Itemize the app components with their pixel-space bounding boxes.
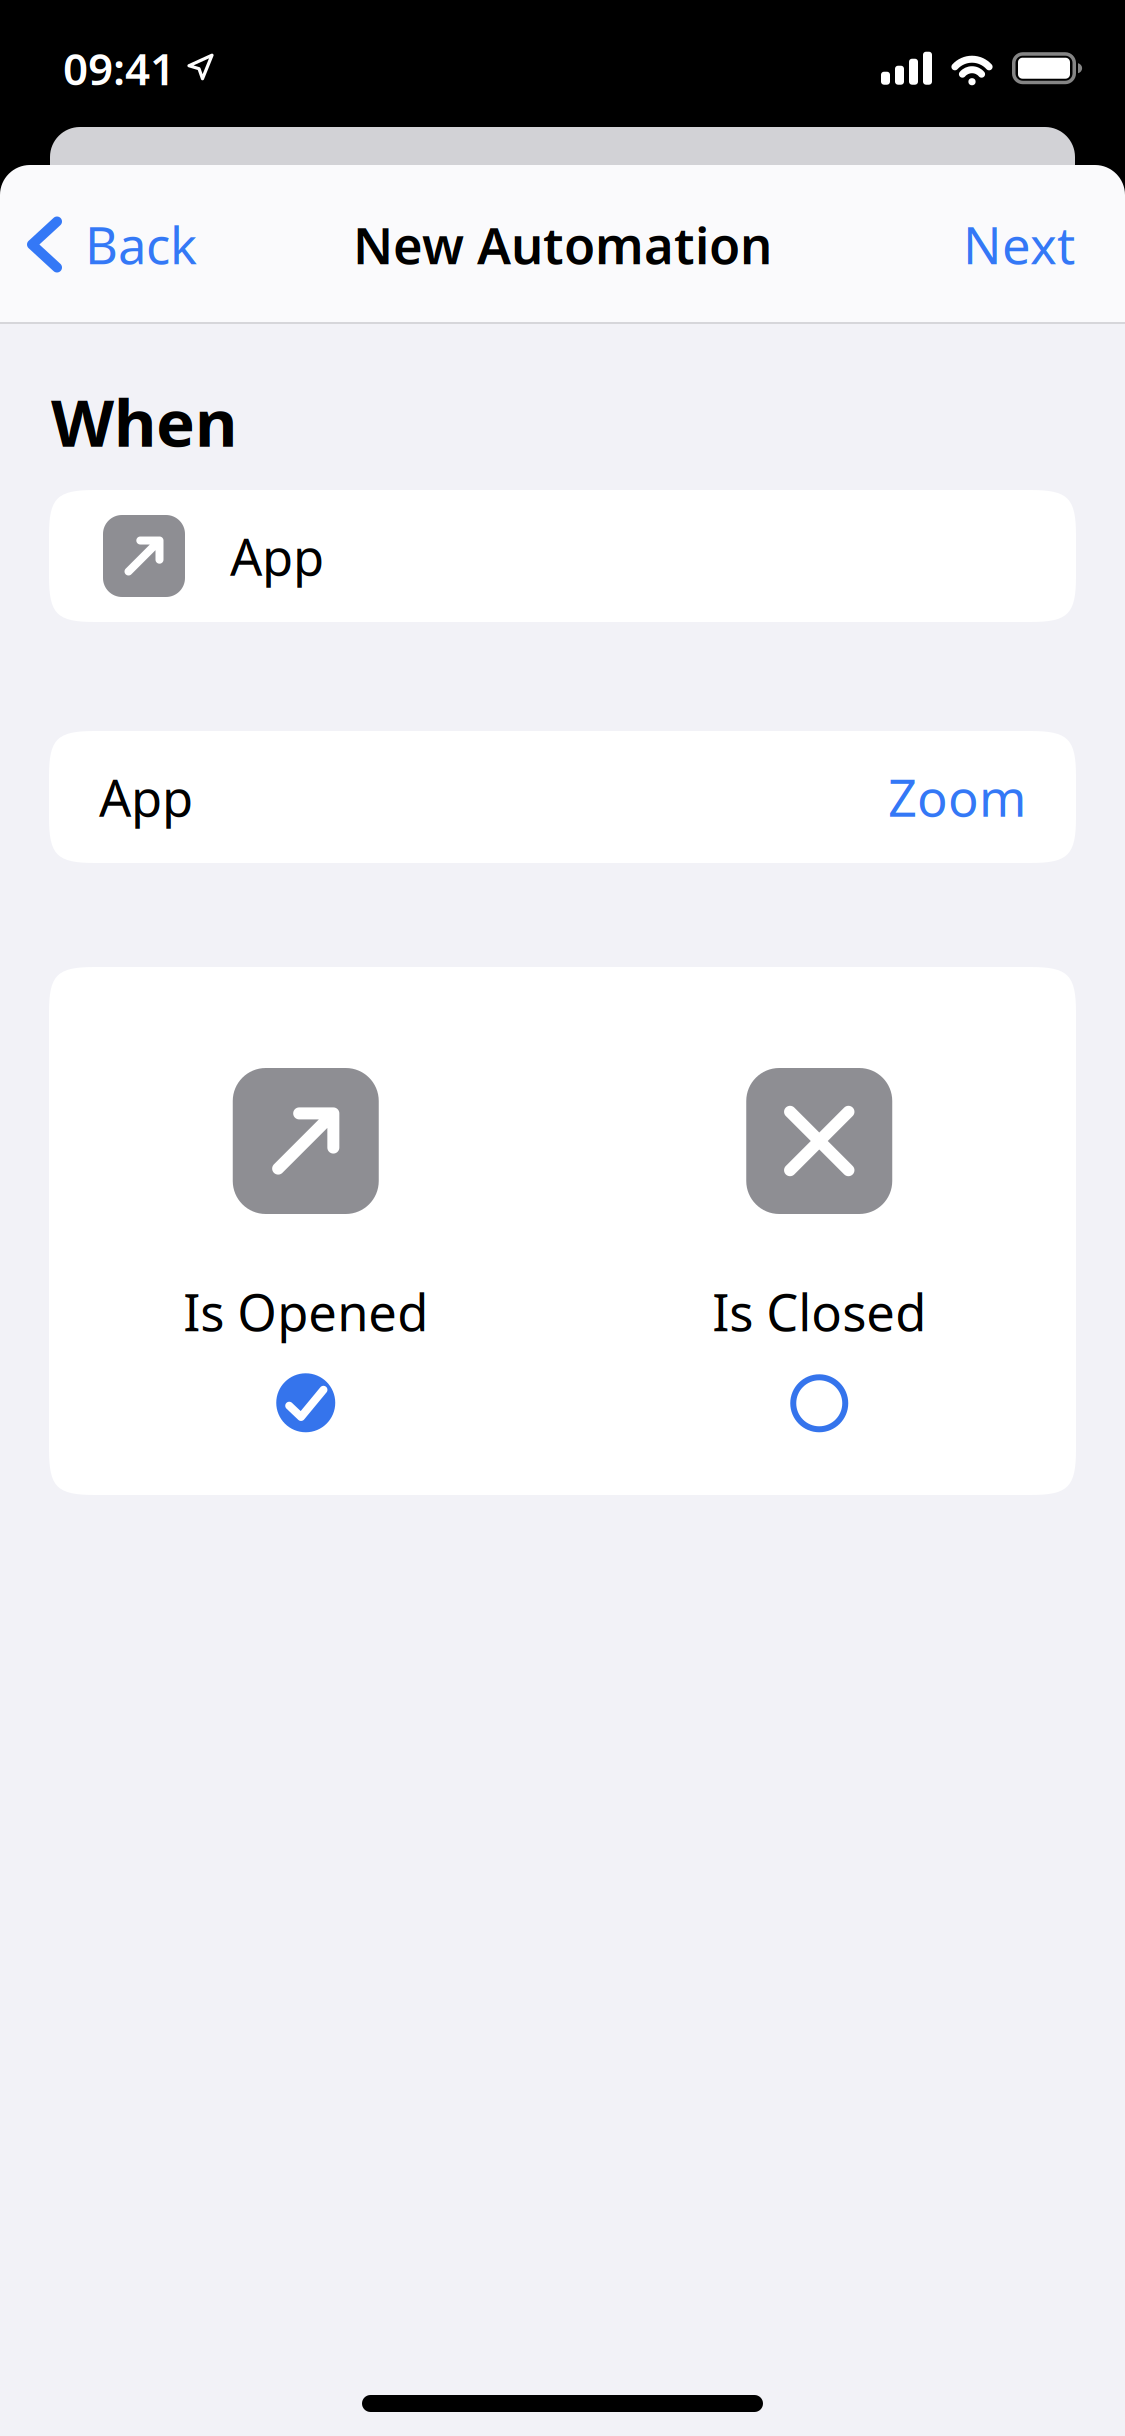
button[interactable]: Is Opened (49, 1068, 562, 1432)
staticText: Next (963, 211, 1075, 278)
staticText: App (99, 763, 193, 831)
staticText: When (51, 378, 237, 465)
staticText: 09:41 (63, 39, 175, 97)
button[interactable]: App (49, 490, 1076, 622)
staticText: Is Opened (183, 1278, 428, 1345)
button[interactable]: Next (963, 211, 1075, 278)
staticText: App (230, 522, 324, 590)
staticText: Back (85, 211, 197, 278)
staticText: Is Closed (712, 1278, 926, 1345)
button[interactable]: Is Closed (562, 1068, 1076, 1432)
button[interactable]: Back (32, 211, 197, 278)
button[interactable]: App (49, 731, 1076, 863)
staticText: Zoom (888, 763, 1026, 831)
staticText: New Automation (353, 211, 772, 278)
